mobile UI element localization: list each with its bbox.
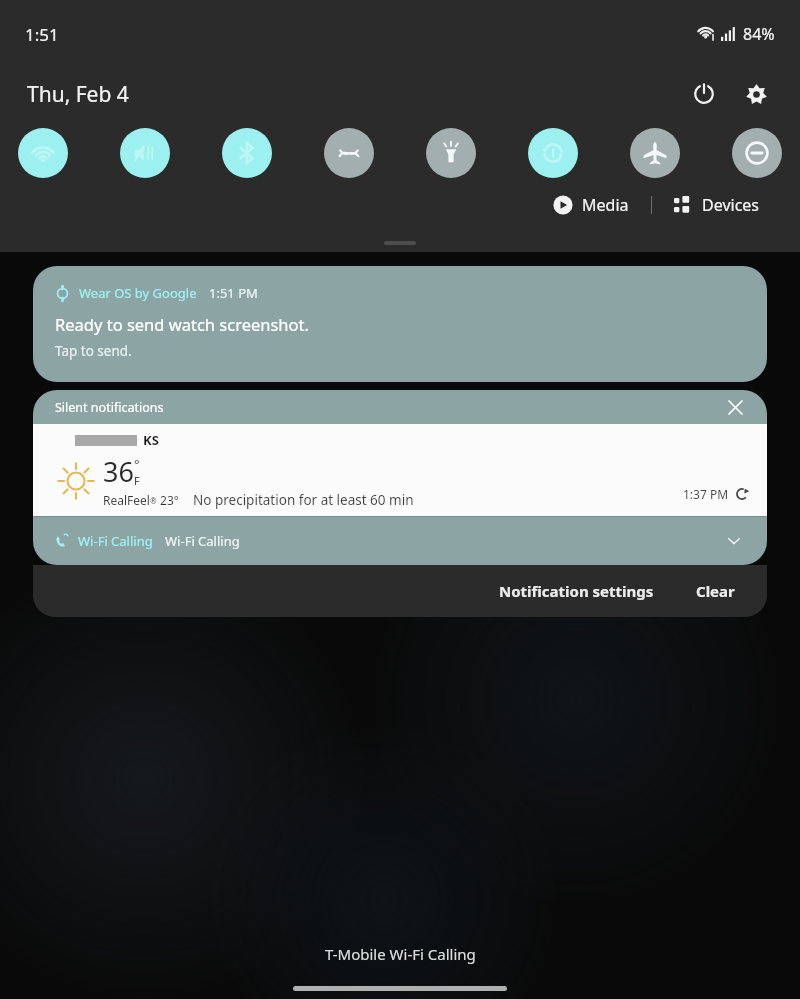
button[interactable]: Settings (734, 72, 778, 116)
staticText: Clear (696, 581, 735, 601)
button[interactable]: Flashlight (426, 128, 476, 178)
button[interactable]: Notification settings (491, 575, 662, 607)
staticText: RealFeel (103, 492, 150, 508)
staticText: 1:51 (25, 23, 59, 46)
staticText: Thu, Feb 4 (27, 80, 129, 109)
button[interactable]: Bluetooth (222, 128, 272, 178)
staticText: 84% (743, 23, 775, 45)
button[interactable]: Airplane mode (630, 128, 680, 178)
staticText: Notification settings (499, 581, 654, 601)
staticText: Ready to send watch screenshot. (55, 313, 309, 335)
staticText: 36 (103, 453, 134, 490)
staticText: Tap to send. (55, 342, 132, 360)
staticText: 23° (157, 492, 179, 508)
staticText: Devices (702, 194, 760, 216)
staticText: Wear OS by Google (79, 284, 197, 302)
button[interactable]: Dismiss silent notifications (723, 395, 747, 419)
staticText: Silent notifications (55, 399, 164, 416)
button[interactable]: Auto rotate (324, 128, 374, 178)
staticText: ° (134, 455, 140, 473)
staticText: KS (143, 431, 159, 449)
button[interactable]: Do not disturb (732, 128, 782, 178)
staticText: T-Mobile Wi-Fi Calling (325, 944, 476, 964)
button[interactable]: Expand (721, 528, 747, 554)
button[interactable]: Power (682, 72, 726, 116)
staticText: ® (150, 495, 157, 506)
button[interactable]: Clear (688, 575, 743, 607)
button[interactable]: Wear OS by Google (33, 266, 767, 382)
button[interactable]: Devices (668, 190, 766, 220)
button[interactable]: Silent notifications (33, 390, 767, 424)
button[interactable]: Sound mode (120, 128, 170, 178)
staticText: 1:51 PM (209, 284, 258, 302)
button[interactable]: Media (547, 190, 635, 220)
button[interactable]: KS (33, 424, 767, 516)
button[interactable]: Sync (528, 128, 578, 178)
staticText: No precipitation for at least 60 min (193, 491, 414, 509)
button[interactable]: Wi-Fi Calling (33, 517, 767, 565)
staticText: Wi-Fi Calling (165, 532, 240, 550)
staticText: F (134, 473, 140, 488)
staticText: Wi-Fi Calling (78, 532, 153, 550)
staticText: Media (582, 194, 629, 216)
staticText: 1:37 PM (683, 486, 729, 502)
button[interactable]: Wi-Fi (18, 128, 68, 178)
